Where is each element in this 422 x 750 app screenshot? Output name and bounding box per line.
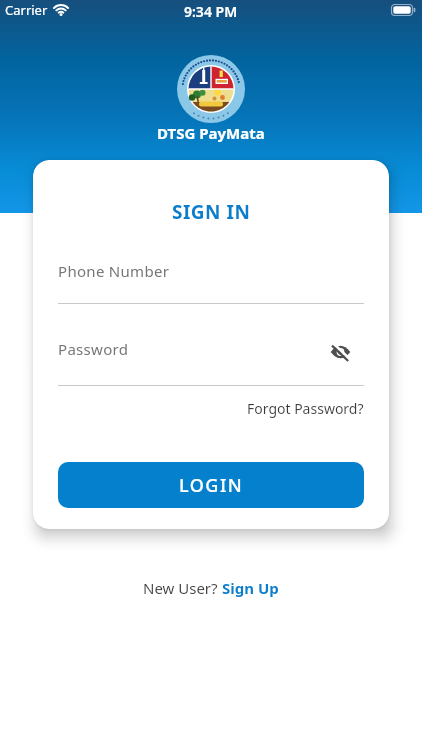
staticText: Carrier — [5, 1, 48, 19]
staticText: Password — [58, 339, 129, 359]
button[interactable]: Sign Up — [222, 578, 279, 598]
staticText: LOGIN — [179, 473, 244, 498]
staticText: Forgot Password? — [247, 399, 364, 418]
staticText: DTSG PayMata — [157, 123, 265, 143]
staticText: 9:34 PM — [184, 2, 238, 20]
button[interactable]: Forgot Password? — [247, 399, 364, 418]
button[interactable]: Password — [58, 339, 364, 359]
staticText: Phone Number — [58, 261, 170, 281]
staticText: Sign Up — [222, 578, 279, 598]
staticText: SIGN IN — [172, 199, 251, 225]
staticText: New User? — [143, 578, 222, 598]
button[interactable]: Phone Number — [58, 261, 364, 281]
button[interactable]: LOGIN — [58, 462, 364, 508]
